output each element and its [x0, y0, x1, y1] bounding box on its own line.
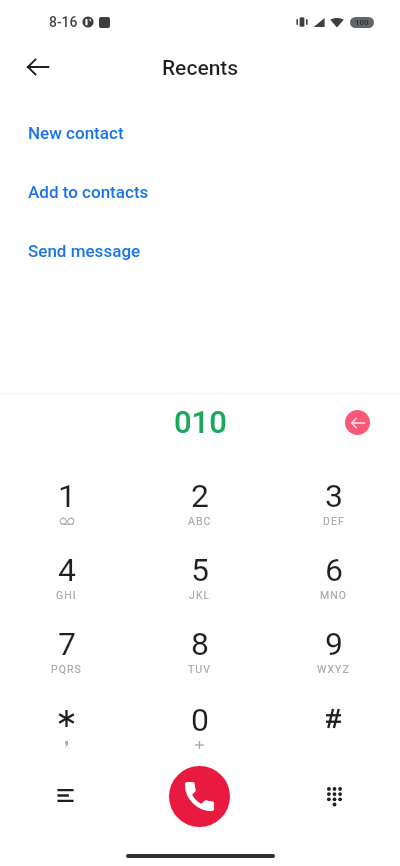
staticText: 7 — [58, 625, 76, 663]
button[interactable]: 3 — [267, 477, 400, 551]
staticText: GHI — [56, 589, 77, 601]
button[interactable]: 4 — [0, 551, 133, 625]
button[interactable]: 5 — [133, 551, 266, 625]
staticText: Send message — [28, 241, 141, 261]
button[interactable]: 1 — [0, 477, 133, 551]
staticText: 010 — [174, 404, 227, 440]
button[interactable]: Back — [16, 45, 60, 89]
button[interactable]: Send message — [0, 231, 400, 271]
button[interactable]: 8 — [133, 625, 266, 699]
staticText: Add to contacts — [28, 182, 149, 202]
button[interactable]: 7 — [0, 625, 133, 699]
staticText: 9 — [325, 625, 343, 663]
button[interactable]: Backspace — [345, 410, 370, 435]
button[interactable]: Add to contacts — [0, 172, 400, 212]
staticText: TUV — [188, 663, 212, 675]
staticText: MNO — [320, 589, 348, 601]
button[interactable]: 0 — [133, 701, 266, 775]
staticText: New contact — [28, 123, 124, 143]
staticText: 8 — [191, 625, 209, 663]
staticText: ABC — [188, 515, 212, 527]
staticText: 3 — [325, 477, 343, 515]
staticText: 8-16 — [49, 14, 78, 30]
button[interactable]: Call log — [41, 771, 89, 819]
staticText: 4 — [58, 551, 76, 589]
button[interactable]: New contact — [0, 113, 400, 153]
button[interactable]: 6 — [267, 551, 400, 625]
staticText: 1 — [58, 477, 76, 515]
button[interactable]: Dialpad — [310, 771, 358, 819]
staticText: DEF — [323, 515, 345, 527]
staticText: 100 — [355, 18, 369, 27]
button[interactable]: 9 — [267, 625, 400, 699]
staticText: 0 — [191, 701, 209, 739]
staticText: PQRS — [51, 663, 82, 675]
staticText: 5 — [191, 551, 209, 589]
button[interactable] — [267, 701, 400, 775]
button[interactable]: Call — [169, 766, 230, 827]
button[interactable] — [0, 701, 133, 775]
staticText: 2 — [191, 477, 209, 515]
button[interactable]: 2 — [133, 477, 266, 551]
staticText: 6 — [325, 551, 343, 589]
staticText: Recents — [162, 56, 239, 81]
staticText: JKL — [189, 589, 211, 601]
staticText: WXYZ — [317, 663, 350, 675]
